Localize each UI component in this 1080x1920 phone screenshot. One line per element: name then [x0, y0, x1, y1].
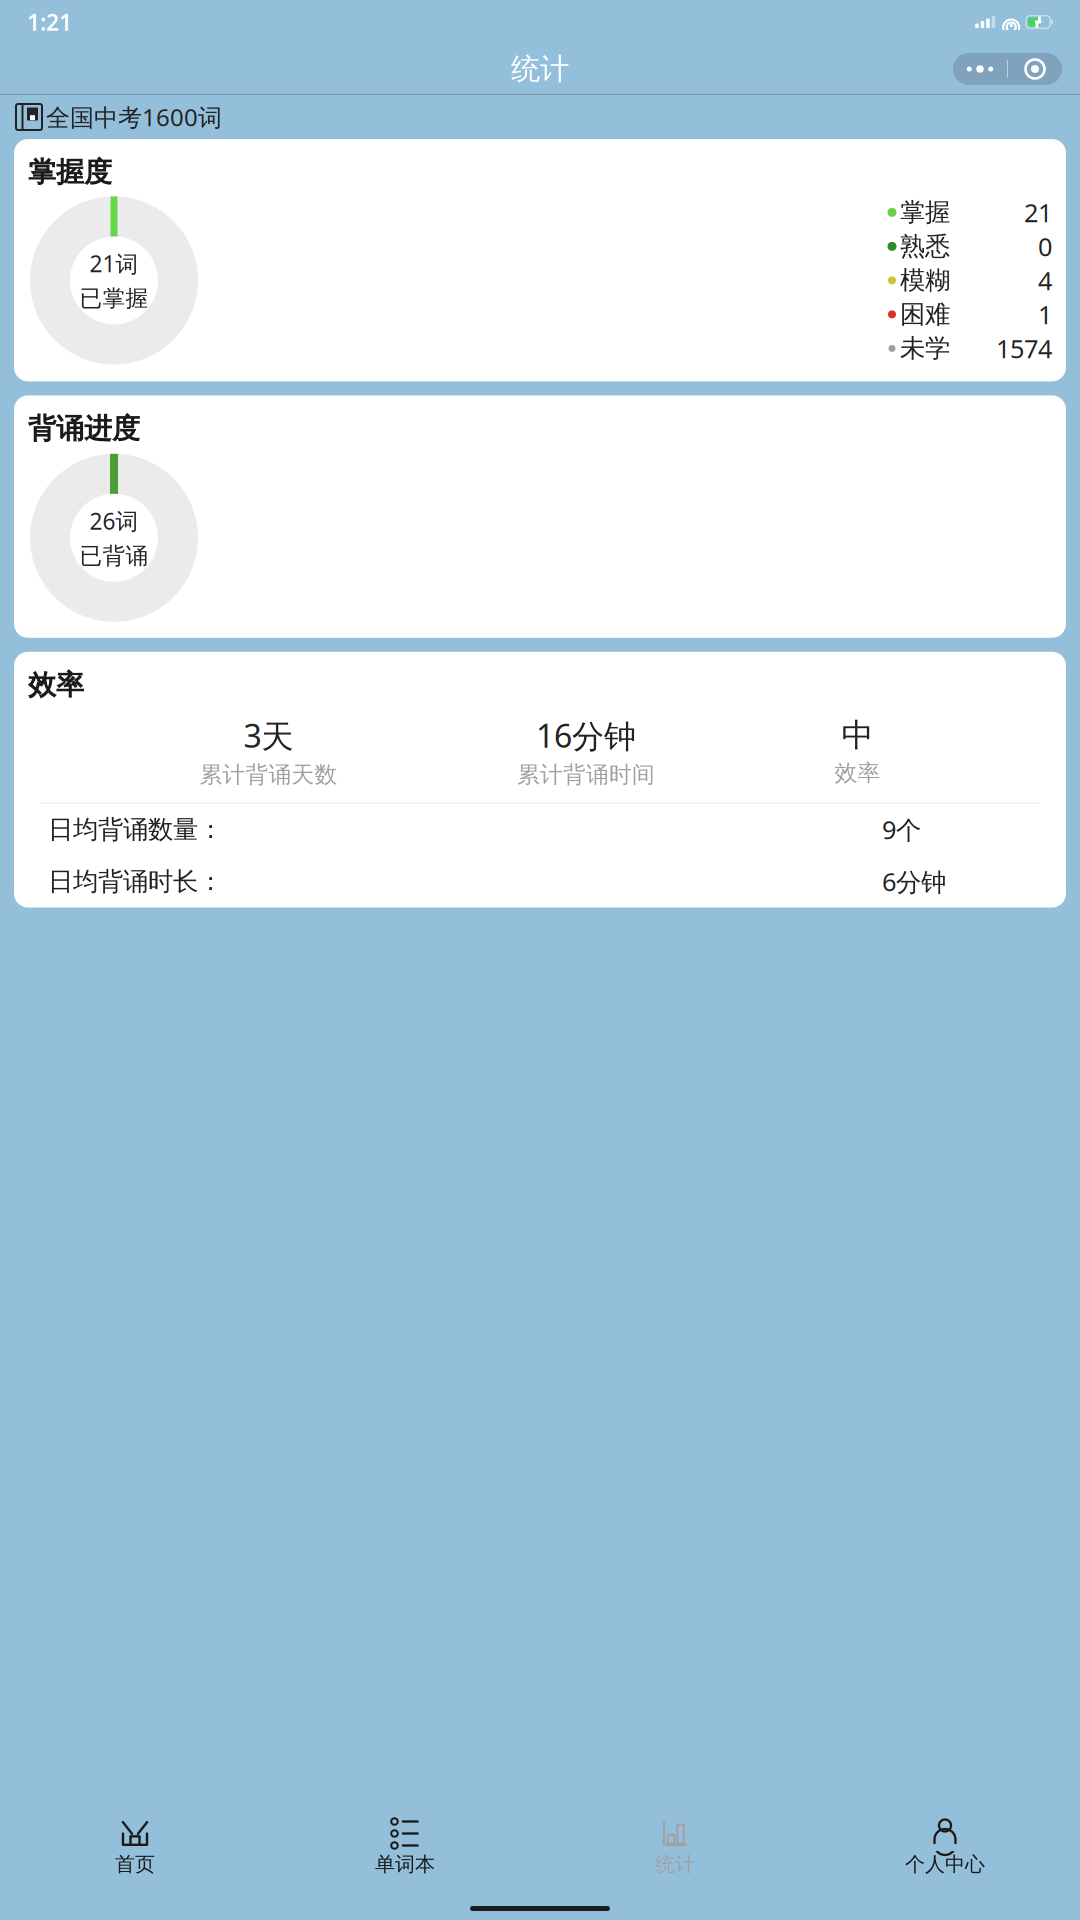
staticText: 日均背诵数量：: [48, 814, 223, 845]
staticText: 日均背诵时长：: [48, 866, 223, 897]
staticText: 困难: [900, 299, 950, 330]
staticText: 已掌握: [79, 284, 148, 312]
staticText: 全国中考1600词: [46, 101, 222, 133]
staticText: 统计: [655, 1852, 695, 1877]
staticText: 模糊: [900, 265, 950, 296]
staticText: 26词: [89, 506, 138, 536]
staticText: 掌握度: [28, 155, 112, 189]
staticText: 累计背诵时间: [517, 761, 655, 788]
staticText: 首页: [115, 1852, 155, 1877]
staticText: 个人中心: [905, 1852, 985, 1877]
staticText: 0: [1038, 230, 1052, 263]
staticText: 16分钟: [536, 714, 636, 757]
button[interactable]: 个人中心: [810, 1810, 1080, 1885]
staticText: 3天: [243, 714, 293, 757]
staticText: 6分钟: [882, 865, 946, 898]
staticText: 1: [1038, 298, 1052, 331]
staticText: 中: [841, 716, 873, 755]
staticText: 未学: [900, 333, 950, 364]
staticText: 1:21: [27, 7, 72, 37]
staticText: 效率: [834, 759, 880, 787]
staticText: 背诵进度: [28, 411, 140, 446]
staticText: 单词本: [375, 1852, 435, 1877]
staticText: 统计: [511, 51, 569, 87]
staticText: 熟悉: [900, 231, 950, 262]
button[interactable]: 首页: [0, 1810, 270, 1885]
button[interactable]: 全国中考1600词: [0, 95, 1080, 139]
staticText: 已背诵: [79, 542, 148, 570]
button[interactable]: 单词本: [270, 1810, 540, 1885]
staticText: 21词: [89, 248, 138, 278]
staticText: 4: [1038, 264, 1052, 297]
staticText: 9个: [882, 813, 921, 846]
staticText: 1574: [996, 332, 1052, 365]
button[interactable]: Close: [1008, 53, 1062, 85]
button[interactable]: 统计: [540, 1810, 810, 1885]
staticText: 掌握: [900, 197, 950, 228]
staticText: 效率: [28, 668, 84, 702]
staticText: 21: [1024, 196, 1052, 229]
button[interactable]: More: [953, 53, 1007, 85]
staticText: 累计背诵天数: [199, 761, 337, 788]
